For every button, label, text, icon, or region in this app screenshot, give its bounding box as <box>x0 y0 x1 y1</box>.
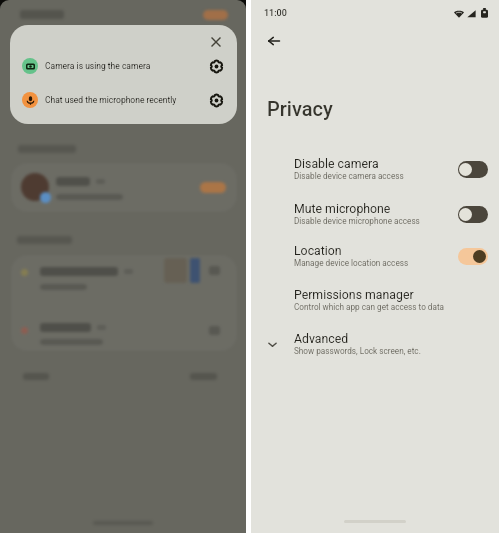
staticText: 11:00 <box>264 8 287 19</box>
button[interactable]: Permissions manager <box>251 283 499 317</box>
button[interactable]: Chat used the microphone recently <box>10 86 237 114</box>
staticText: Disable camera <box>294 157 379 171</box>
staticText: Mute microphone <box>294 202 391 216</box>
button[interactable]: Settings <box>204 54 228 78</box>
button[interactable]: Toggle on <box>458 248 488 265</box>
button[interactable]: Advanced <box>251 327 499 361</box>
button[interactable]: Mute microphone <box>251 197 499 231</box>
button[interactable]: Disable camera <box>251 152 499 186</box>
button[interactable]: Toggle off <box>458 206 488 223</box>
staticText: Disable device microphone access <box>294 216 420 226</box>
button[interactable]: Camera is using the camera <box>10 52 237 80</box>
staticText: Chat used the microphone recently <box>45 95 177 105</box>
button[interactable]: Settings <box>204 88 228 112</box>
staticText: Location <box>294 244 342 258</box>
staticText: Manage device location access <box>294 258 409 268</box>
button[interactable]: Back <box>260 27 288 55</box>
button[interactable]: Location <box>251 239 499 273</box>
staticText: Disable device camera access <box>294 171 404 181</box>
button[interactable]: Close <box>203 29 229 55</box>
staticText: Advanced <box>294 332 349 346</box>
staticText: Privacy <box>267 97 333 120</box>
staticText: Camera is using the camera <box>45 61 151 71</box>
staticText: Show passwords, Lock screen, etc. <box>294 346 421 356</box>
staticText: Permissions manager <box>294 288 414 302</box>
staticText: Control which app can get access to data <box>294 302 445 312</box>
button[interactable]: Toggle off <box>458 161 488 178</box>
